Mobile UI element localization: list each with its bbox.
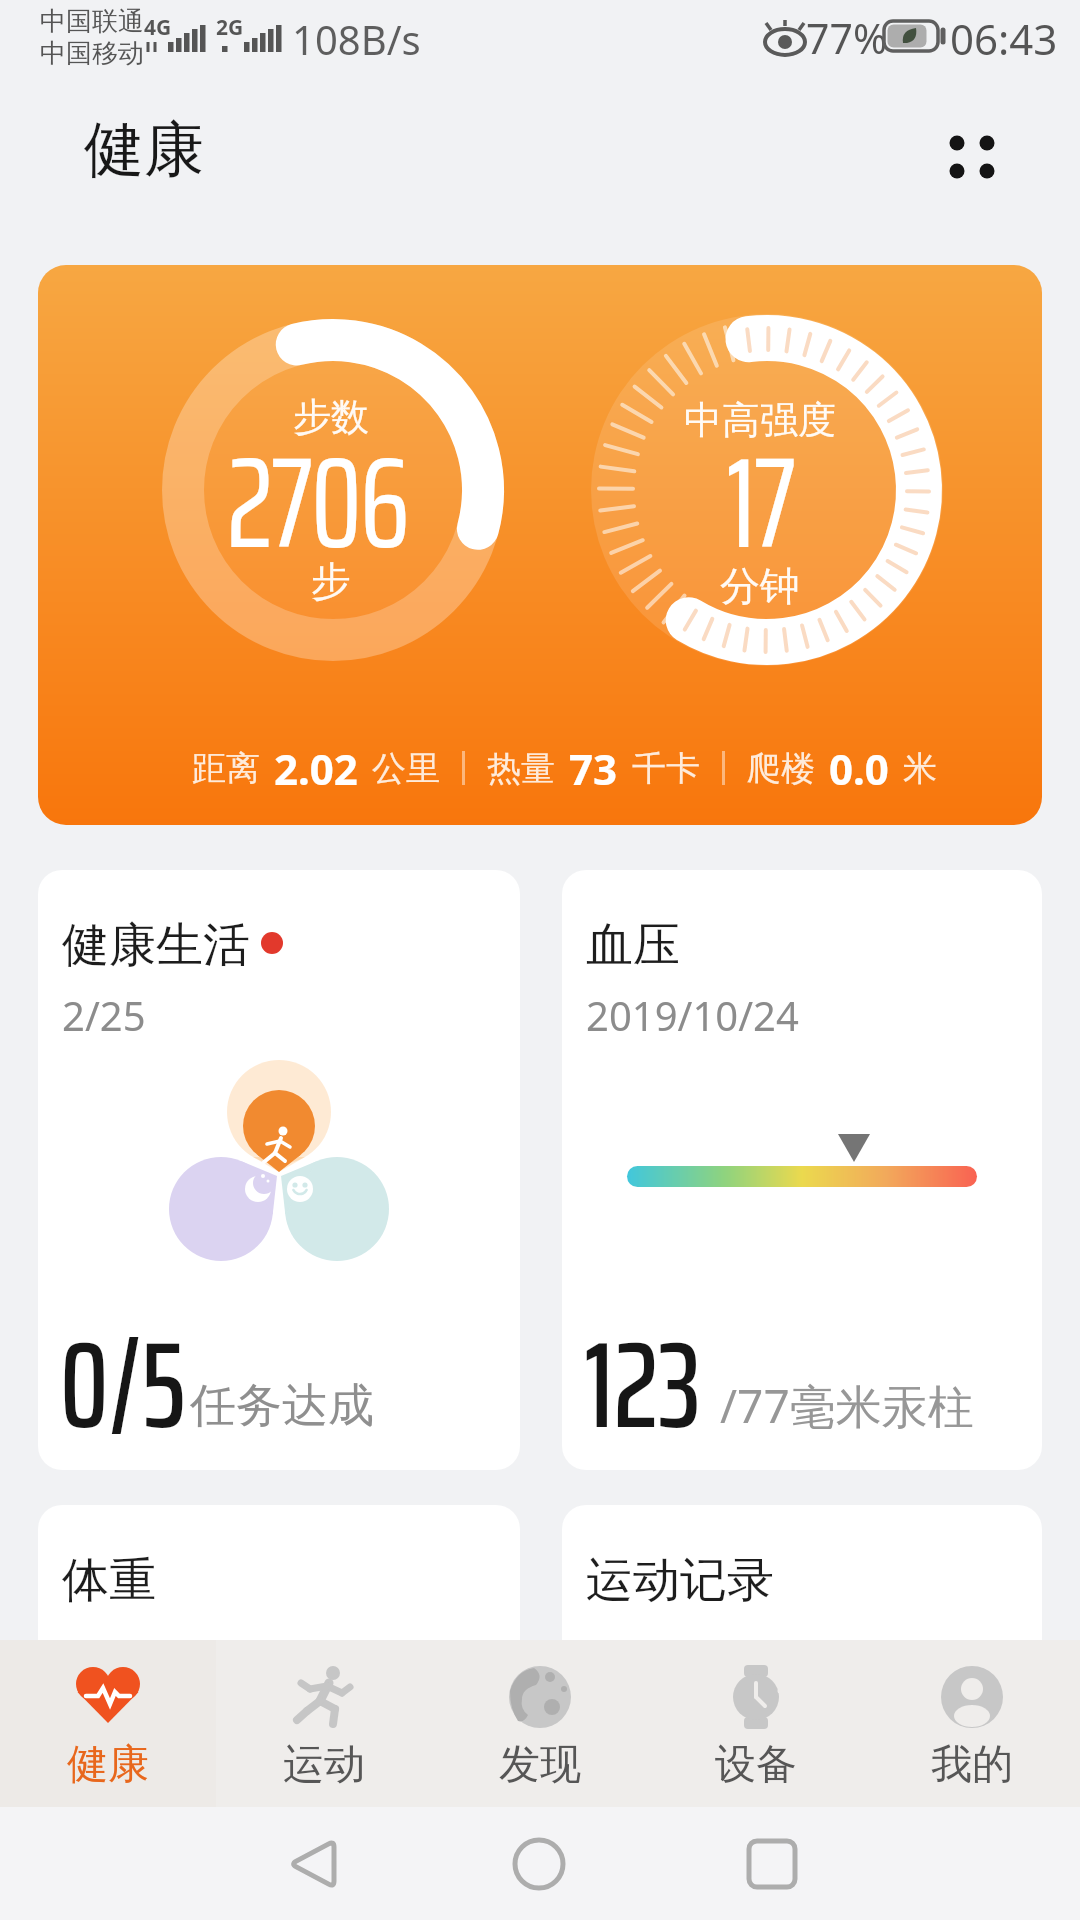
- staticText: 77%: [806, 10, 887, 66]
- staticText: 2019/10/24: [586, 988, 799, 1042]
- staticText: 中国移动: [40, 37, 144, 70]
- staticText: 2/25: [62, 988, 146, 1042]
- staticText: 千卡: [632, 747, 700, 790]
- staticText: 分钟: [720, 561, 800, 611]
- staticText: 发现: [499, 1739, 581, 1791]
- button[interactable]: 我的: [864, 1640, 1080, 1807]
- staticText: 123: [584, 1289, 701, 1439]
- button[interactable]: [489, 1814, 589, 1914]
- staticText: 爬楼: [747, 747, 815, 790]
- staticText: 任务达成: [190, 1377, 374, 1435]
- staticText: 血压: [586, 916, 680, 975]
- staticText: 公里: [372, 747, 440, 790]
- button[interactable]: [263, 1814, 363, 1914]
- staticText: 运动记录: [586, 1551, 774, 1610]
- staticText: 2706: [227, 402, 408, 572]
- button[interactable]: 健康生活: [38, 870, 520, 1470]
- staticText: 06:43: [950, 10, 1058, 67]
- staticText: 健康生活: [62, 916, 250, 975]
- staticText: 步: [311, 556, 351, 606]
- button[interactable]: 发现: [432, 1640, 648, 1807]
- staticText: 热量: [487, 747, 555, 790]
- staticText: 4G: [144, 13, 172, 42]
- staticText: 运动: [283, 1739, 365, 1791]
- staticText: 米: [903, 747, 937, 790]
- staticText: 108B/s: [292, 12, 421, 66]
- button[interactable]: 运动记录: [562, 1505, 1042, 1807]
- button[interactable]: 运动: [216, 1640, 432, 1807]
- staticText: 中国联通: [40, 5, 144, 38]
- staticText: 0/5: [60, 1289, 186, 1439]
- staticText: 设备: [715, 1739, 797, 1791]
- button[interactable]: [936, 124, 1002, 184]
- button[interactable]: 设备: [648, 1640, 864, 1807]
- button[interactable]: 血压: [562, 870, 1042, 1470]
- button[interactable]: 步数: [38, 265, 1042, 825]
- staticText: 73: [569, 740, 618, 796]
- staticText: 步数: [293, 393, 369, 441]
- staticText: 2.02: [274, 740, 358, 796]
- button[interactable]: 健康: [0, 1640, 216, 1807]
- button[interactable]: 体重: [38, 1505, 520, 1807]
- staticText: 体重: [62, 1551, 156, 1610]
- staticText: 健康: [67, 1739, 149, 1791]
- staticText: 距离: [192, 747, 260, 790]
- staticText: /77毫米汞柱: [720, 1374, 974, 1437]
- staticText: 我的: [931, 1739, 1013, 1791]
- button[interactable]: [722, 1814, 822, 1914]
- staticText: 2G: [216, 13, 244, 42]
- staticText: 健康: [84, 112, 204, 188]
- staticText: 中高强度: [684, 396, 836, 444]
- staticText: 17: [726, 402, 794, 572]
- staticText: 0.0: [829, 740, 889, 796]
- staticText: 2019/10/24: [586, 1627, 799, 1681]
